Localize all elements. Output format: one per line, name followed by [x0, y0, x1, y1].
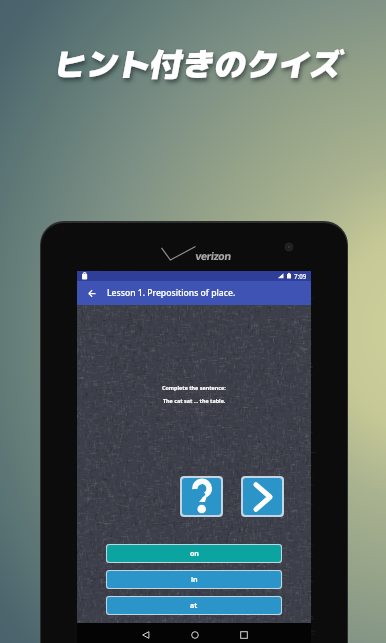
staticText: 7:09 — [294, 272, 307, 280]
staticText: verizon — [195, 249, 231, 263]
staticText: Complete the sentence: — [162, 384, 226, 391]
staticText: The cat sat ... the table. — [163, 397, 226, 404]
button[interactable]: Back — [141, 626, 150, 643]
button[interactable]: Home — [190, 626, 199, 643]
staticText: Lesson 1. Prepositions of place. — [107, 287, 236, 299]
button[interactable]: Navigate up — [77, 281, 107, 305]
staticText: at — [190, 601, 198, 611]
staticText: on — [190, 549, 199, 559]
staticText: ヒント付きのクイズ — [51, 42, 340, 87]
staticText: in — [191, 575, 198, 585]
button[interactable]: Next question — [243, 478, 282, 515]
button[interactable]: Recent apps — [239, 626, 248, 643]
button[interactable]: Show hint — [182, 478, 221, 515]
button[interactable]: in — [107, 571, 281, 588]
button[interactable]: at — [107, 597, 281, 614]
button[interactable]: on — [107, 545, 281, 562]
